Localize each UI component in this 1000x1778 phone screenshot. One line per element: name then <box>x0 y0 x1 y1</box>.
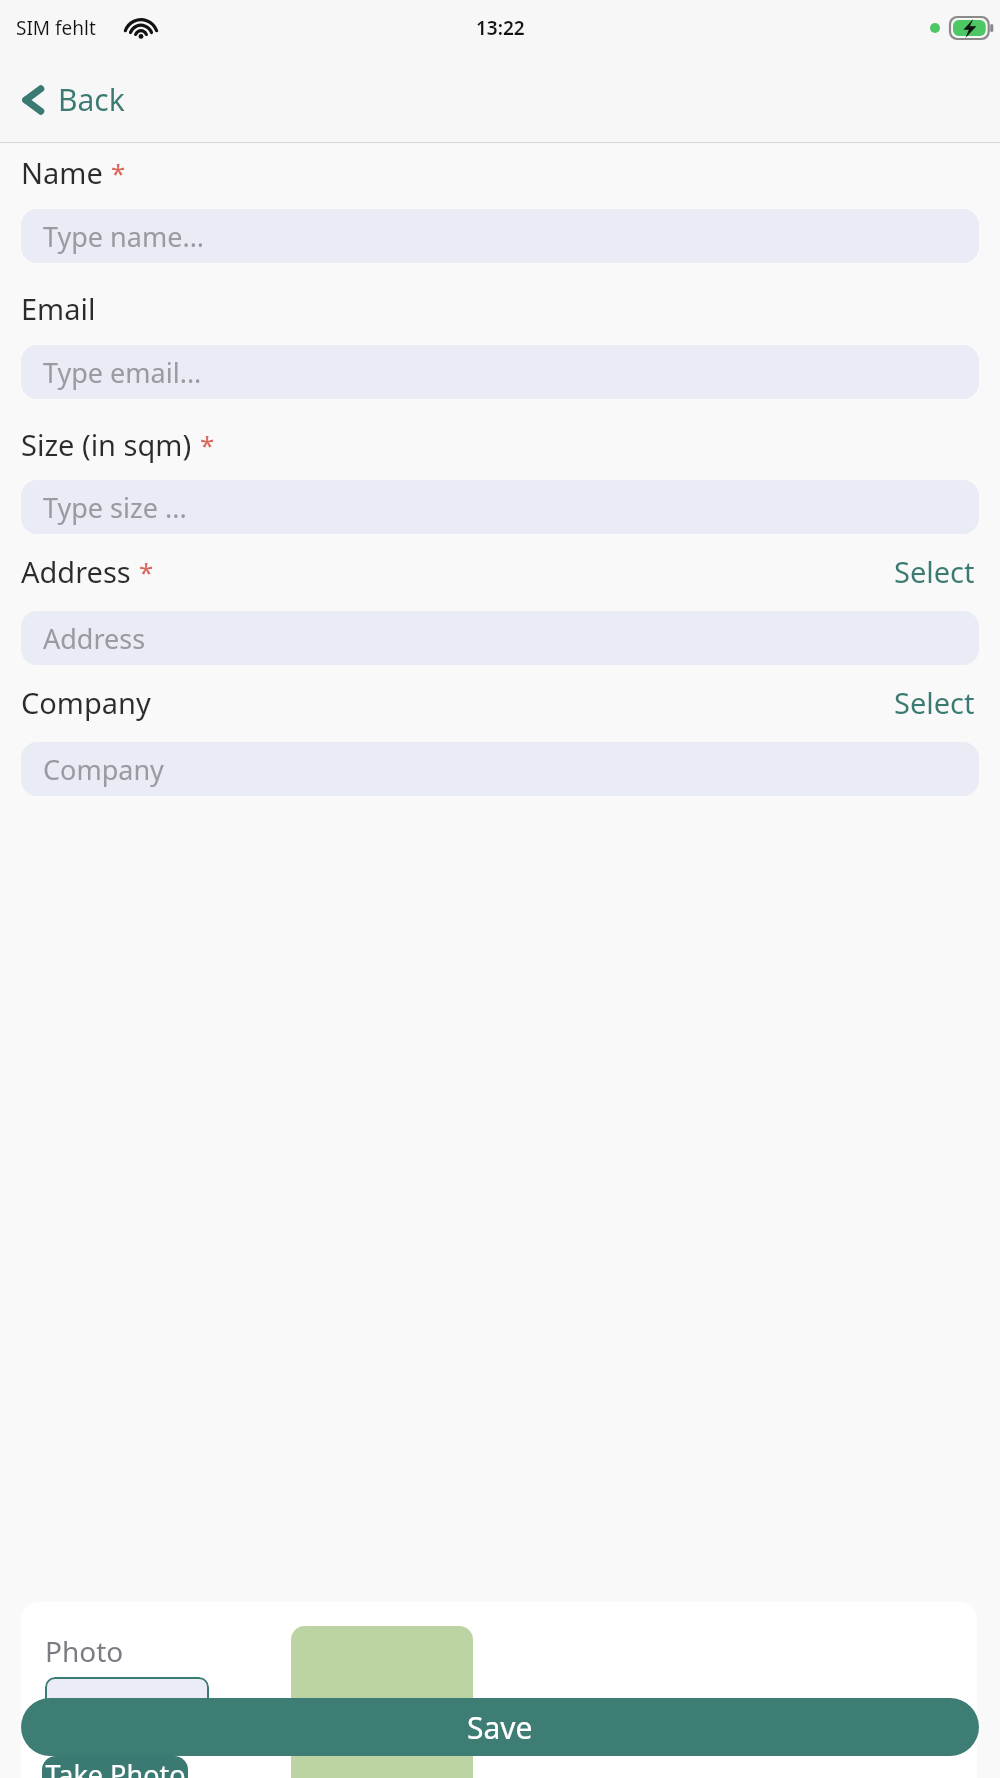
button[interactable]: Select <box>890 679 979 726</box>
button[interactable]: Type email... <box>21 345 979 399</box>
staticText: Back <box>58 79 125 120</box>
staticText: SIM fehlt <box>16 15 96 41</box>
staticText: Type email... <box>43 354 202 391</box>
staticText: Email <box>21 289 96 328</box>
staticText: * <box>200 427 215 462</box>
staticText: Type size ... <box>43 489 187 526</box>
button[interactable]: Back <box>14 73 131 126</box>
button[interactable]: Address <box>21 611 979 665</box>
staticText: Size (in sqm) <box>21 425 192 464</box>
button[interactable]: Type size ... <box>21 480 979 534</box>
staticText: Company <box>21 683 151 722</box>
staticText: Company <box>43 751 164 788</box>
staticText: Take Photo <box>45 1756 186 1778</box>
staticText: Address <box>21 552 131 591</box>
staticText: Photo <box>45 1632 124 1670</box>
button[interactable]: Type name... <box>21 209 979 263</box>
staticText: Save <box>467 1707 533 1748</box>
button[interactable]: Select <box>890 548 979 595</box>
staticText: 13:22 <box>476 15 525 41</box>
button[interactable]: Take Photo <box>42 1756 188 1778</box>
staticText: Select <box>894 683 975 722</box>
button[interactable]: Company <box>21 742 979 796</box>
staticText: Type name... <box>43 218 205 255</box>
staticText: Select <box>894 552 975 591</box>
staticText: * <box>111 155 126 190</box>
staticText: Address <box>43 620 146 657</box>
staticText: Name <box>21 153 103 192</box>
staticText: * <box>139 554 154 589</box>
button[interactable]: Save <box>21 1698 979 1756</box>
